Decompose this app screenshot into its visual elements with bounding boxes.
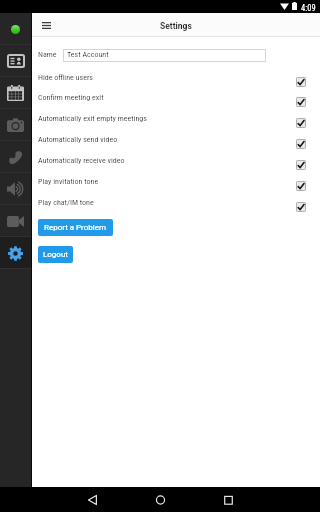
button[interactable]: Audio	[0, 173, 31, 205]
button[interactable]: Video	[0, 205, 31, 237]
staticText: Automatically exit empty meetings	[38, 114, 296, 123]
button[interactable]: Recent apps	[216, 488, 240, 512]
staticText: Report a Problem	[44, 223, 107, 232]
staticText: Name	[38, 50, 57, 59]
button[interactable]: Presence status	[0, 13, 31, 45]
staticText: Automatically send video	[38, 135, 296, 144]
button[interactable]: Play invitation tone	[32, 175, 320, 196]
button[interactable]: Calls	[0, 141, 31, 173]
staticText: Play chat/IM tone	[38, 198, 296, 207]
button[interactable]: Calendar	[0, 77, 31, 109]
button[interactable]: Camera	[0, 109, 31, 141]
button[interactable]: Home	[148, 488, 172, 512]
button[interactable]: Play chat/IM tone	[32, 196, 320, 217]
staticText: Automatically receive video	[38, 156, 296, 165]
button[interactable]: Automatically send video	[32, 133, 320, 154]
staticText: Test Account	[67, 50, 109, 59]
button[interactable]: Report a Problem	[38, 219, 113, 236]
button[interactable]: Logout	[38, 246, 73, 263]
staticText: Play invitation tone	[38, 177, 296, 186]
button[interactable]: Test Account	[63, 49, 266, 62]
button[interactable]: Back	[80, 488, 104, 512]
button[interactable]: Open navigation menu	[32, 13, 60, 37]
staticText: 4:09	[301, 3, 316, 13]
staticText: Confirm meeting exit	[38, 93, 296, 102]
button[interactable]: Settings	[0, 237, 31, 269]
button[interactable]: Confirm meeting exit	[32, 91, 320, 112]
staticText: Hide offline users	[38, 73, 296, 82]
staticText: Logout	[43, 250, 68, 259]
staticText: Settings	[160, 21, 192, 31]
button[interactable]: Automatically receive video	[32, 154, 320, 175]
button[interactable]: Contacts	[0, 45, 31, 77]
button[interactable]: Automatically exit empty meetings	[32, 112, 320, 133]
button[interactable]: Hide offline users	[32, 71, 320, 92]
